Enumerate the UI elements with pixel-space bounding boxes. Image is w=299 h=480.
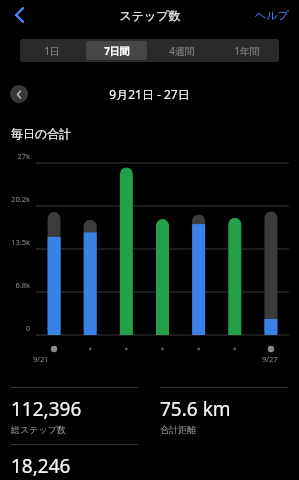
staticText: 13.5k <box>0 237 30 247</box>
staticText: 20.2k <box>0 194 30 204</box>
staticText: 総ステップ数 <box>11 424 66 435</box>
staticText: 0 <box>0 323 30 333</box>
staticText: 112,396 <box>11 396 82 422</box>
staticText: ヘルプ <box>255 8 289 22</box>
button[interactable]: 4週間 <box>151 41 212 60</box>
staticText: 1年間 <box>234 44 260 58</box>
staticText: 1日 <box>44 44 60 58</box>
button[interactable]: Back <box>0 0 40 30</box>
staticText: 合計距離 <box>160 424 196 435</box>
staticText: 9/21 <box>33 354 49 364</box>
button[interactable]: Previous week <box>10 85 28 103</box>
staticText: ステップ数 <box>119 8 181 23</box>
staticText: 27k <box>0 151 30 161</box>
staticText: 6.8k <box>0 280 30 290</box>
button[interactable]: 1年間 <box>216 41 277 60</box>
staticText: 9月21日 - 27日 <box>109 86 190 102</box>
button[interactable]: ヘルプ <box>245 2 299 28</box>
staticText: 75.6 km <box>160 396 231 422</box>
staticText: 18,246 <box>11 453 71 479</box>
staticText: 毎日の合計 <box>11 126 72 141</box>
button[interactable]: 1日 <box>22 41 82 60</box>
staticText: 7日間 <box>104 44 130 58</box>
staticText: 4週間 <box>169 44 195 58</box>
button[interactable]: 7日間 <box>86 41 147 60</box>
staticText: 9/27 <box>262 354 278 364</box>
